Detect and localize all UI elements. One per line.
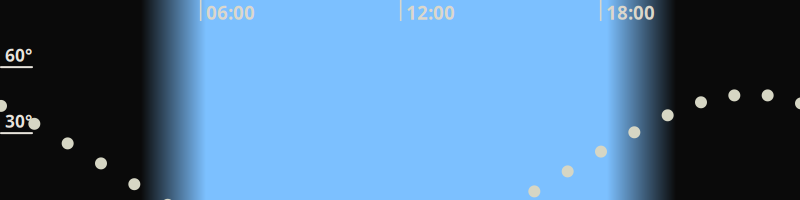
staticText: 12:00 [406,0,455,25]
staticText: 18:00 [606,0,655,25]
staticText: 06:00 [206,0,255,25]
staticText: 30° [5,109,32,132]
button[interactable]: 24-hour temperature chart [0,0,800,200]
staticText: 60° [5,43,32,66]
